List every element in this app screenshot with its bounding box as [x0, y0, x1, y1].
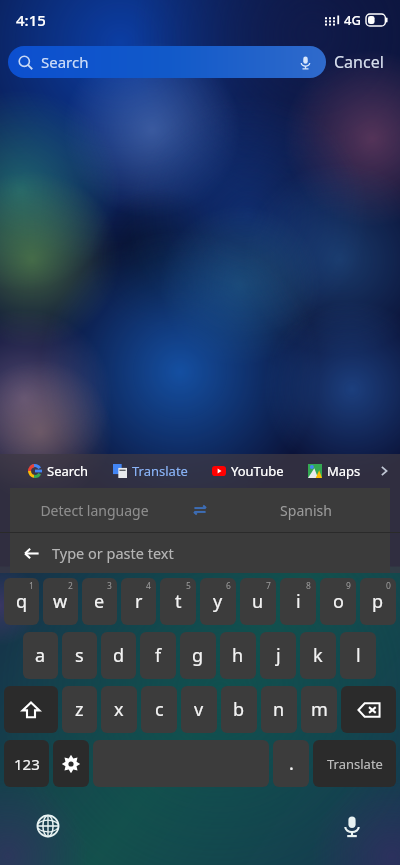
- button[interactable]: Translate: [111, 460, 190, 482]
- staticText: r: [135, 589, 143, 614]
- button[interactable]: d: [101, 632, 136, 679]
- staticText: 4G: [344, 11, 361, 29]
- staticText: t: [175, 589, 182, 614]
- button[interactable]: Search: [8, 46, 326, 78]
- button[interactable]: r: [121, 578, 156, 625]
- button[interactable]: Backspace: [341, 686, 396, 733]
- staticText: Cancel: [334, 51, 384, 73]
- staticText: Translate: [132, 462, 188, 480]
- staticText: f: [155, 643, 162, 668]
- button[interactable]: e: [82, 578, 117, 625]
- staticText: 9: [346, 580, 351, 592]
- button[interactable]: o: [320, 578, 356, 625]
- staticText: u: [252, 589, 264, 614]
- staticText: Search: [41, 52, 89, 72]
- button[interactable]: f: [140, 632, 176, 679]
- button[interactable]: c: [141, 686, 177, 733]
- staticText: 7: [266, 580, 271, 592]
- button[interactable]: Back: [10, 533, 390, 573]
- button[interactable]: j: [260, 632, 296, 679]
- staticText: Type or paste text: [52, 543, 174, 563]
- staticText: z: [75, 697, 84, 722]
- staticText: c: [155, 697, 164, 722]
- button[interactable]: Voice search: [294, 51, 316, 73]
- staticText: .: [289, 751, 294, 776]
- staticText: Search: [47, 462, 89, 480]
- button[interactable]: v: [181, 686, 217, 733]
- staticText: Maps: [327, 462, 361, 480]
- button[interactable]: Detect language: [10, 488, 178, 532]
- staticText: n: [273, 697, 285, 722]
- staticText: h: [232, 643, 244, 668]
- staticText: 3: [107, 580, 112, 592]
- staticText: q: [16, 589, 28, 614]
- staticText: x: [114, 697, 124, 722]
- staticText: p: [372, 589, 384, 614]
- button[interactable]: Maps: [306, 460, 363, 482]
- button[interactable]: l: [340, 632, 376, 679]
- button[interactable]: Shift: [4, 686, 58, 733]
- staticText: m: [311, 697, 328, 722]
- staticText: 4: [146, 580, 151, 592]
- staticText: e: [94, 589, 105, 614]
- button[interactable]: p: [360, 578, 396, 625]
- button[interactable]: Settings: [53, 740, 89, 787]
- staticText: w: [53, 589, 68, 614]
- staticText: 8: [306, 580, 311, 592]
- staticText: y: [213, 589, 223, 614]
- button[interactable]: Translate: [313, 740, 396, 787]
- staticText: a: [35, 643, 46, 668]
- button[interactable]: b: [221, 686, 257, 733]
- button[interactable]: YouTube: [210, 460, 286, 482]
- button[interactable]: w: [43, 578, 78, 625]
- button[interactable]: 123: [4, 740, 49, 787]
- button[interactable]: .: [273, 740, 309, 787]
- staticText: g: [192, 643, 204, 668]
- staticText: b: [233, 697, 245, 722]
- staticText: j: [276, 643, 281, 668]
- button[interactable]: n: [261, 686, 297, 733]
- staticText: 1: [29, 580, 34, 592]
- staticText: v: [194, 697, 204, 722]
- button[interactable]: m: [301, 686, 337, 733]
- staticText: d: [113, 643, 125, 668]
- button[interactable]: Cancel: [326, 46, 392, 78]
- button[interactable]: z: [62, 686, 97, 733]
- button[interactable]: More apps: [372, 459, 396, 483]
- button[interactable]: i: [280, 578, 316, 625]
- button[interactable]: a: [23, 632, 58, 679]
- staticText: YouTube: [231, 462, 284, 480]
- staticText: Translate: [327, 755, 383, 773]
- button[interactable]: Back: [10, 533, 52, 573]
- button[interactable]: Swap languages: [178, 488, 222, 532]
- staticText: s: [75, 643, 84, 668]
- button[interactable]: Voice input: [334, 808, 370, 844]
- button[interactable]: s: [62, 632, 97, 679]
- staticText: 5: [186, 580, 191, 592]
- staticText: i: [296, 589, 301, 614]
- button[interactable]: y: [200, 578, 236, 625]
- button[interactable]: q: [4, 578, 39, 625]
- button[interactable]: h: [220, 632, 256, 679]
- staticText: 2: [68, 580, 73, 592]
- staticText: o: [333, 589, 344, 614]
- button[interactable]: k: [300, 632, 336, 679]
- staticText: Detect language: [40, 501, 149, 520]
- staticText: 6: [226, 580, 231, 592]
- button[interactable]: g: [180, 632, 216, 679]
- staticText: Spanish: [280, 501, 332, 520]
- button[interactable]: t: [160, 578, 196, 625]
- button[interactable]: Change language: [30, 808, 66, 844]
- staticText: 123: [14, 754, 40, 774]
- staticText: k: [313, 643, 323, 668]
- button[interactable]: u: [240, 578, 276, 625]
- button[interactable]: Search: [26, 460, 91, 482]
- staticText: 0: [386, 580, 391, 592]
- button[interactable]: Spanish: [222, 488, 390, 532]
- button[interactable]: x: [101, 686, 137, 733]
- staticText: l: [356, 643, 361, 668]
- staticText: 4:15: [16, 10, 46, 30]
